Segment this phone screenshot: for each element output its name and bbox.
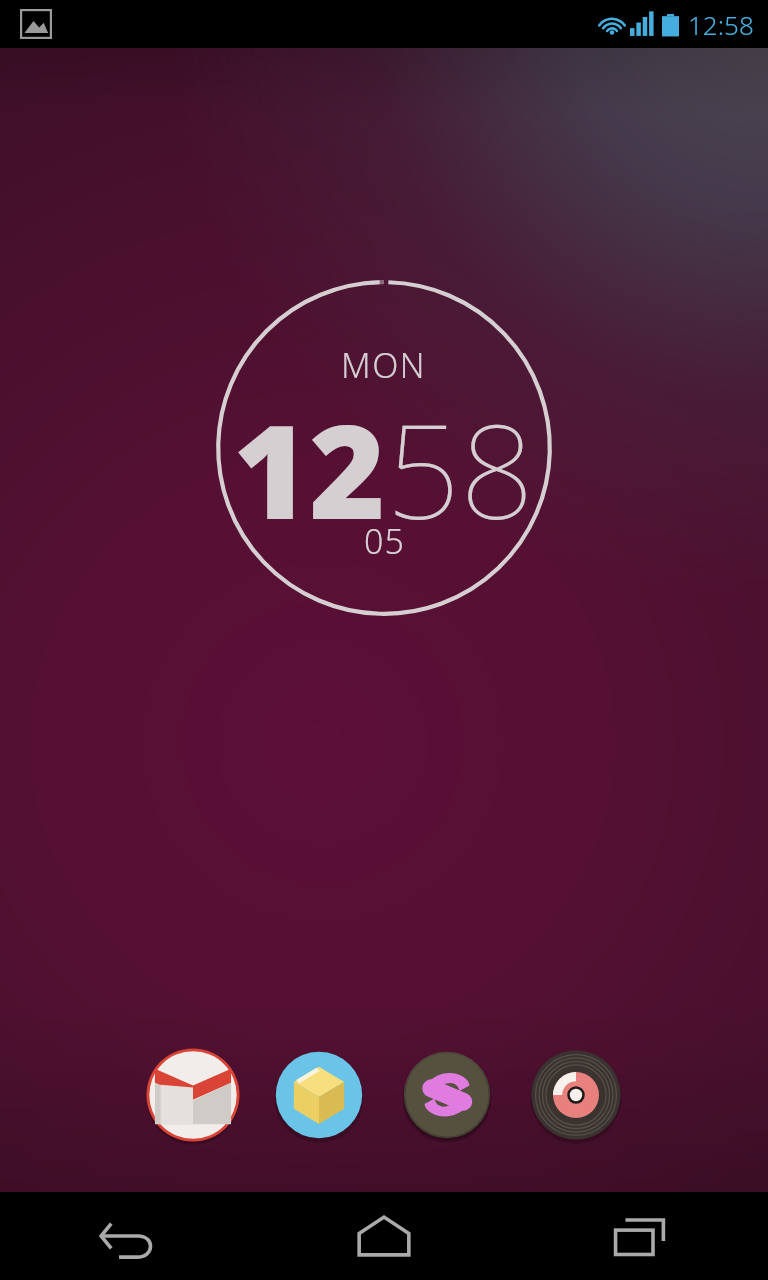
staticText: 12 <box>233 380 386 557</box>
button[interactable]: Back <box>78 1192 178 1280</box>
staticText: MON <box>341 342 427 388</box>
button[interactable]: Notes <box>402 1050 492 1140</box>
button[interactable]: Music <box>530 1049 622 1141</box>
staticText: 05 <box>364 518 405 564</box>
staticText: 12:58 <box>688 7 754 42</box>
staticText: 58 <box>386 380 535 557</box>
button[interactable]: Recent apps <box>590 1192 690 1280</box>
button[interactable]: Clock, Monday 12:58 <box>214 278 554 618</box>
button[interactable]: Gmail <box>146 1048 240 1142</box>
button[interactable]: Deliveries <box>274 1050 364 1140</box>
button[interactable]: Home <box>334 1192 434 1280</box>
other: Wallpaper <box>20 9 52 39</box>
